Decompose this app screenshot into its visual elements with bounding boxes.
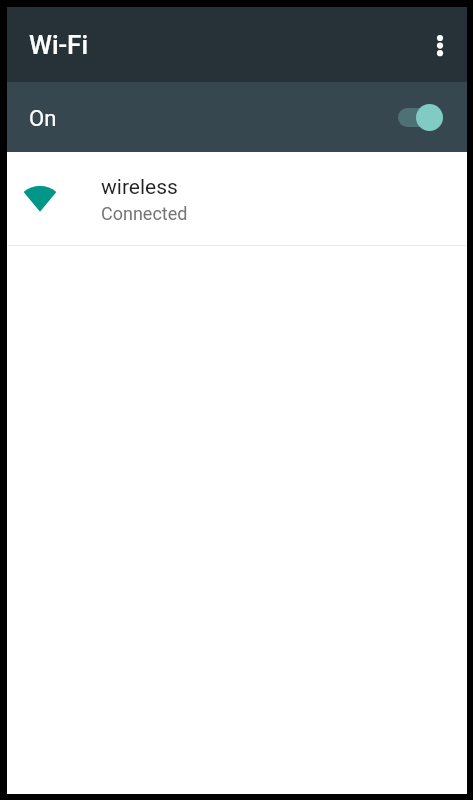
button[interactable]: More options — [416, 21, 464, 69]
staticText: wireless — [101, 175, 178, 200]
button[interactable]: wireless — [7, 152, 467, 245]
button[interactable]: Wi-Fi on/off — [398, 104, 443, 131]
staticText: On — [29, 106, 57, 132]
button[interactable]: On — [7, 82, 467, 152]
staticText: Connected — [101, 203, 188, 224]
staticText: Wi-Fi — [29, 30, 89, 60]
